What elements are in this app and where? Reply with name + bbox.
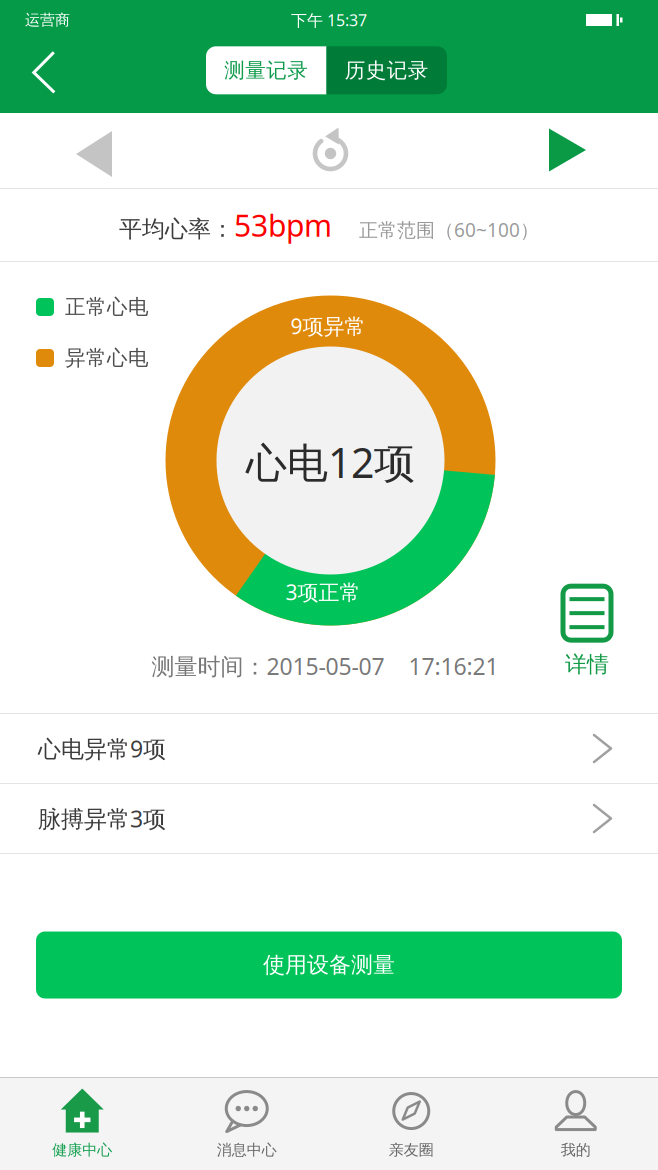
staticText: 平均心率： — [119, 214, 234, 243]
button[interactable]: 我的 — [493, 1078, 658, 1170]
staticText: 正常范围（60~100） — [359, 217, 539, 242]
button[interactable]: 心电异常9项 — [0, 714, 658, 783]
button[interactable]: 亲友圈 — [329, 1078, 493, 1170]
button[interactable]: 返回 — [33, 52, 54, 93]
staticText: 3项正常 — [285, 578, 360, 606]
staticText: 使用设备测量 — [263, 951, 395, 979]
button[interactable]: 播放 — [549, 128, 586, 171]
staticText: 测量记录 — [224, 57, 308, 83]
staticText: 下午 15:37 — [291, 9, 367, 31]
staticText: 心电12项 — [246, 434, 415, 490]
staticText: 健康中心 — [52, 1141, 112, 1159]
staticText: 心电异常9项 — [38, 733, 166, 764]
button[interactable]: 健康中心 — [0, 1078, 164, 1170]
button[interactable]: 脉搏异常3项 — [0, 784, 658, 853]
button[interactable]: 使用设备测量 — [36, 931, 622, 998]
staticText: 历史记录 — [345, 57, 429, 83]
button[interactable]: 上一条 — [76, 131, 112, 177]
staticText: 脉搏异常3项 — [38, 803, 166, 834]
staticText: 消息中心 — [217, 1141, 277, 1159]
staticText: 9项异常 — [290, 312, 365, 340]
button[interactable]: 消息中心 — [164, 1078, 329, 1170]
staticText: 53bpm — [234, 205, 332, 245]
staticText: 详情 — [565, 651, 609, 678]
staticText: 异常心电 — [65, 345, 149, 371]
staticText: 亲友圈 — [389, 1141, 434, 1159]
staticText: 我的 — [561, 1141, 591, 1159]
button[interactable]: 历史记录 — [326, 46, 447, 94]
button[interactable]: 重播 — [302, 125, 358, 181]
button[interactable]: 详情 — [552, 584, 622, 678]
button[interactable]: 测量记录 — [206, 46, 326, 94]
staticText: 测量时间：2015-05-07 17:16:21 — [151, 650, 498, 682]
staticText: 正常心电 — [65, 294, 149, 320]
staticText: 运营商 — [25, 11, 70, 29]
